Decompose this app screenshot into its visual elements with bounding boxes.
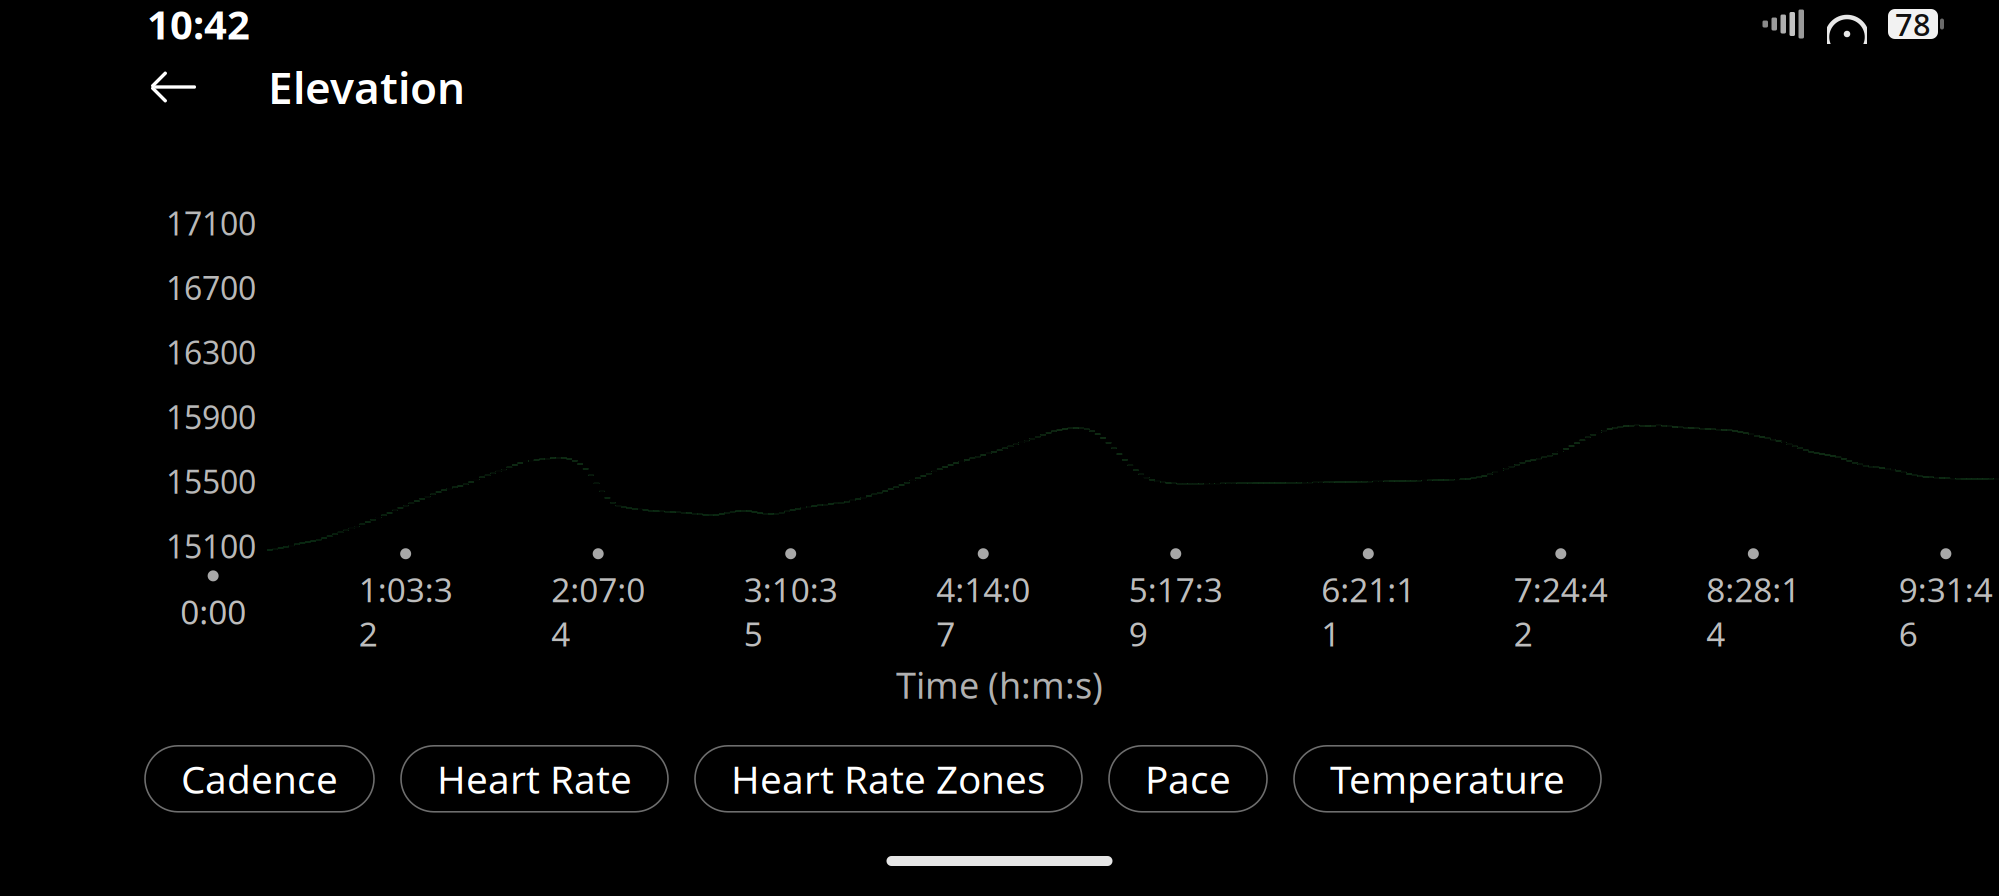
staticText: Heart Rate: [437, 753, 632, 804]
staticText: Temperature: [1330, 753, 1565, 804]
staticText: 7:24:42: [1514, 567, 1608, 656]
staticText: 3:10:35: [744, 567, 838, 656]
staticText: 0:00: [180, 589, 246, 634]
staticText: Elevation: [268, 58, 465, 116]
staticText: 78: [1895, 4, 1931, 44]
staticText: 17100: [166, 202, 256, 244]
button[interactable]: Pace: [1109, 746, 1267, 812]
staticText: Cadence: [181, 753, 338, 804]
staticText: 9:31:46: [1899, 567, 1993, 656]
staticText: 15100: [166, 525, 256, 567]
staticText: 16700: [166, 266, 256, 309]
staticText: 5:17:39: [1129, 567, 1223, 656]
staticText: Pace: [1145, 753, 1231, 804]
staticText: 6:21:11: [1321, 567, 1415, 656]
staticText: 16300: [166, 331, 256, 373]
button[interactable]: Heart Rate Zones: [695, 746, 1082, 812]
staticText: 10:42: [147, 0, 250, 50]
staticText: 4:14:07: [936, 567, 1030, 656]
staticText: 8:28:14: [1706, 567, 1800, 656]
staticText: Time (h:m:s): [896, 661, 1103, 709]
button[interactable]: Cadence: [145, 746, 374, 812]
staticText: 2:07:04: [551, 567, 645, 656]
staticText: Heart Rate Zones: [731, 753, 1046, 804]
staticText: 1:03:32: [359, 567, 453, 656]
button[interactable]: Heart Rate: [401, 746, 668, 812]
button[interactable]: Back: [132, 44, 218, 130]
staticText: 15500: [166, 460, 256, 503]
staticText: 15900: [166, 396, 256, 438]
button[interactable]: Temperature: [1294, 746, 1601, 812]
